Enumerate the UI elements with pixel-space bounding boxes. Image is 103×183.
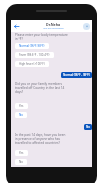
staticText: Please enter your body temperature in °F… [15, 33, 68, 41]
staticText: Normal (96°F - 98°F) [63, 73, 90, 77]
staticText: No [86, 125, 90, 129]
staticText: Your first consultation [43, 27, 64, 30]
staticText: Fever (98.6°F - 100.4°F) [19, 53, 50, 57]
staticText: No [19, 160, 23, 164]
button[interactable]: No [15, 159, 27, 165]
button[interactable]: Yes [15, 150, 28, 156]
button[interactable]: Normal (96°F-98°F) [15, 43, 49, 49]
staticText: Yes [19, 104, 24, 108]
staticText: Yes [19, 151, 24, 155]
button[interactable]: Doctor profile [83, 23, 90, 30]
button[interactable]: No [15, 112, 27, 118]
button[interactable]: Fever (98.6°F - 100.4°F) [15, 52, 54, 58]
button[interactable]: Yes [15, 103, 28, 109]
button[interactable]: No [84, 124, 92, 130]
button[interactable]: Normal (96°F - 98°F) [61, 72, 92, 78]
staticText: Did you or your family members travelled… [15, 82, 65, 94]
staticText: In the past 14 days, have you been in pr… [15, 133, 66, 145]
staticText: No [19, 113, 23, 117]
button[interactable]: High fever (>100°F) [15, 61, 49, 67]
staticText: Dr.Neha [46, 22, 61, 27]
staticText: Normal (96°F-98°F) [19, 44, 45, 48]
staticText: High fever (>100°F) [19, 62, 45, 66]
button[interactable]: Back [12, 22, 20, 30]
